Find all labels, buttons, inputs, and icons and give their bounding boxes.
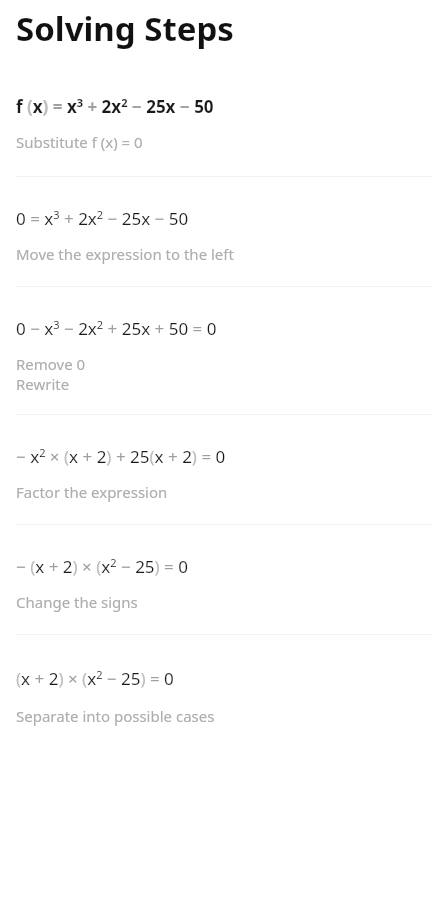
button[interactable]: − (x + 2) × (x2 − 25) = 0 [0, 525, 432, 634]
button[interactable]: 0 = x3 + 2x2 − 25x − 50 [0, 177, 432, 286]
staticText: Change the signs [16, 592, 138, 612]
staticText: Solving Steps [16, 6, 234, 51]
staticText: − (x + 2) × (x2 − 25) = 0 [16, 555, 188, 578]
staticText: Separate into possible cases [16, 706, 215, 726]
staticText: Factor the expression [16, 482, 168, 502]
staticText: (x + 2) × (x2 − 25) = 0 [16, 667, 174, 690]
staticText: Substitute f (x) = 0 [16, 132, 143, 152]
staticText: 0 = x3 + 2x2 − 25x − 50 [16, 207, 189, 230]
button[interactable]: 0 − x3 − 2x2 + 25x + 50 = 0 [0, 287, 432, 414]
staticText: Rewrite [16, 374, 70, 394]
staticText: − x2 × (x + 2) + 25(x + 2) = 0 [16, 445, 226, 468]
button[interactable]: − x2 × (x + 2) + 25(x + 2) = 0 [0, 415, 432, 524]
staticText: Move the expression to the left [16, 244, 234, 264]
button[interactable]: (x + 2) × (x2 − 25) = 0 [0, 635, 432, 750]
staticText: 0 − x3 − 2x2 + 25x + 50 = 0 [16, 317, 217, 340]
staticText: Remove 0 [16, 354, 86, 374]
staticText: f (x) = x3 + 2x2 − 25x − 50 [16, 95, 214, 118]
button[interactable]: f (x) = x3 + 2x2 − 25x − 50 [0, 53, 432, 176]
